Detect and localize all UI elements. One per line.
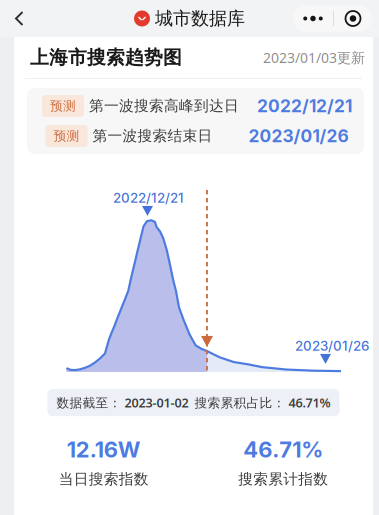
staticText: 2023/01/26 <box>295 338 369 354</box>
staticText: 预测 <box>50 98 76 114</box>
staticText: 数据截至： 2023-01-02 搜索累积占比： 46.71% <box>56 394 330 411</box>
staticText: 上海市搜索趋势图 <box>30 46 182 69</box>
staticText: 46.71% <box>243 436 323 463</box>
staticText: 当日搜索指数 <box>59 470 149 488</box>
staticText: 2022/12/21 <box>257 95 352 116</box>
staticText: 第一波搜索结束日 <box>92 127 212 145</box>
staticText: 城市数据库 <box>155 7 245 30</box>
button[interactable]: Back <box>0 0 25 37</box>
staticText: 预测 <box>53 128 79 144</box>
staticText: 2023/01/03更新 <box>263 48 365 67</box>
staticText: 搜索累计指数 <box>238 470 328 488</box>
button[interactable]: Close <box>334 5 372 31</box>
staticText: 2022/12/21 <box>113 190 184 206</box>
staticText: 2023/01/26 <box>248 125 348 146</box>
staticText: 12.16W <box>67 436 141 463</box>
staticText: 第一波搜索高峰到达日 <box>89 97 239 115</box>
button[interactable]: More <box>293 5 333 31</box>
